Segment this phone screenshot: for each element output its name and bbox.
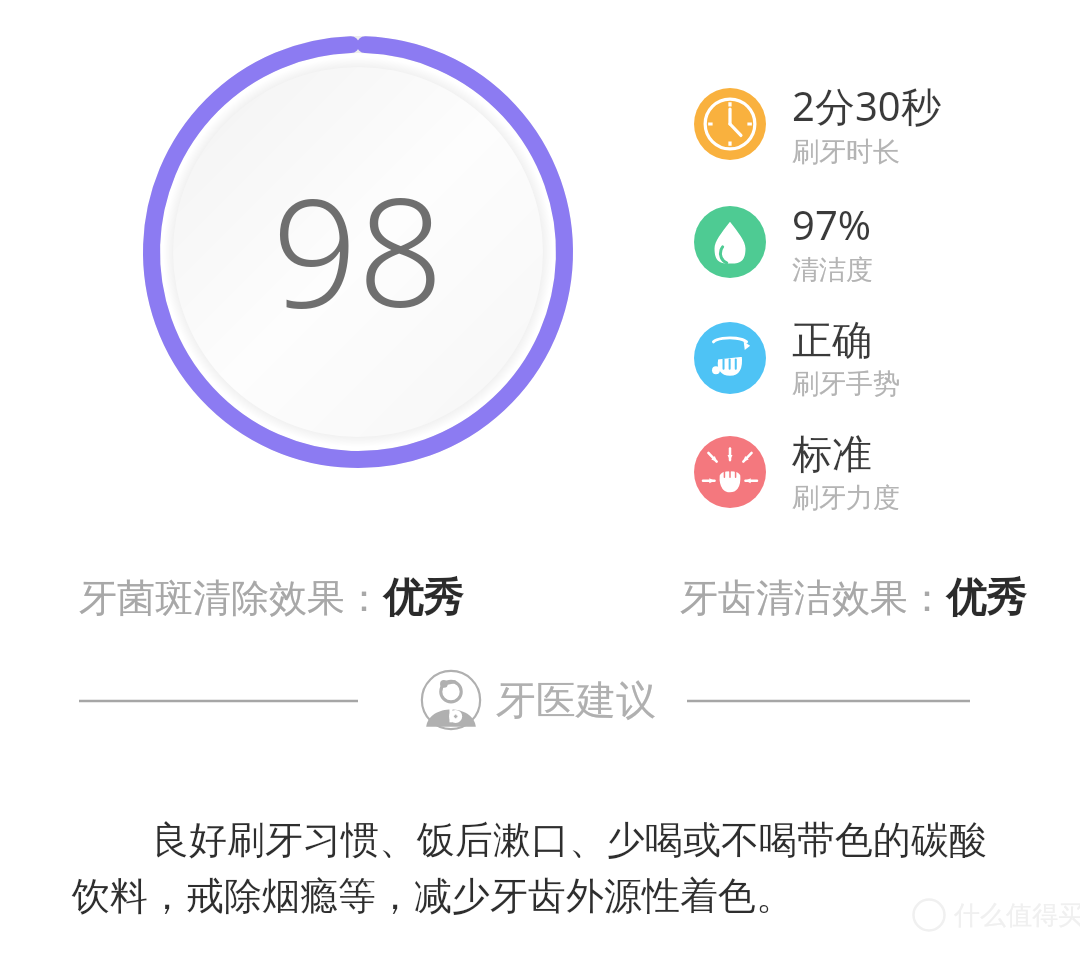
staticText: 什么值得买 [954, 899, 1080, 932]
staticText: 优秀 [383, 572, 463, 622]
staticText: 良好刷牙习惯、饭后漱口、少喝或不喝带色的碳酸饮料，戒除烟瘾等，减少牙齿外源性着色… [72, 812, 1012, 920]
staticText: 优秀 [946, 572, 1026, 622]
button[interactable]: 刷牙力度 [694, 429, 900, 515]
staticText: 2分30秒 [792, 78, 941, 133]
staticText: 98 [272, 147, 444, 351]
staticText: 标准 [792, 429, 872, 479]
staticText: 刷牙时长 [792, 135, 900, 169]
staticText: 清洁度 [792, 253, 873, 287]
staticText: 牙齿清洁效果： [680, 574, 946, 622]
button[interactable]: 刷牙时长 [694, 78, 941, 169]
button[interactable]: 刷牙手势 [694, 315, 900, 401]
staticText: 97% [792, 197, 871, 251]
button[interactable]: 牙菌斑清除效果： [79, 572, 463, 622]
staticText: 牙菌斑清除效果： [79, 574, 383, 622]
staticText: 牙医建议 [496, 675, 656, 725]
staticText: 刷牙力度 [792, 481, 900, 515]
staticText: 刷牙手势 [792, 367, 900, 401]
button[interactable]: 清洁度 [694, 197, 873, 287]
staticText: 正确 [792, 315, 872, 365]
button[interactable]: 牙齿清洁效果： [680, 572, 1026, 622]
